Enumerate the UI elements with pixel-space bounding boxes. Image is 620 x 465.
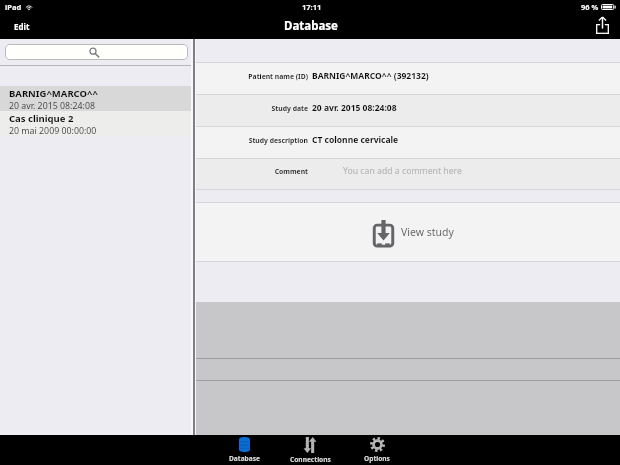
staticText: 17:11 bbox=[302, 2, 322, 12]
staticText: Study description bbox=[248, 136, 308, 145]
staticText: Options bbox=[364, 454, 390, 463]
staticText: Study date bbox=[271, 104, 308, 113]
staticText: Patient name (ID) bbox=[248, 72, 308, 81]
button[interactable]: Cas clinique 2 bbox=[0, 111, 193, 136]
staticText: 20 avr. 2015 08:24:08 bbox=[9, 100, 95, 111]
staticText: iPad bbox=[5, 2, 22, 12]
staticText: BARNIG^MARCO^^ bbox=[9, 87, 98, 100]
button[interactable]: Study description bbox=[196, 127, 620, 158]
button[interactable]: Study date bbox=[196, 95, 620, 126]
staticText: 20 avr. 2015 08:24:08 bbox=[312, 102, 397, 114]
button[interactable]: Connections bbox=[282, 435, 338, 465]
staticText: 20 mai 2009 00:00:00 bbox=[9, 125, 97, 136]
staticText: View study bbox=[401, 225, 454, 239]
staticText: Database bbox=[229, 454, 260, 463]
staticText: Cas clinique 2 bbox=[9, 112, 74, 125]
staticText: Comment bbox=[274, 167, 308, 176]
staticText: You can add a comment here bbox=[343, 165, 462, 177]
staticText: 96 % bbox=[581, 2, 599, 12]
staticText: Edit bbox=[14, 21, 30, 32]
button[interactable]: BARNIG^MARCO^^ bbox=[0, 86, 193, 111]
button[interactable]: View study bbox=[196, 203, 620, 261]
button[interactable]: Comment bbox=[196, 159, 620, 189]
button[interactable] bbox=[5, 44, 188, 60]
staticText: CT colonne cervicale bbox=[312, 134, 399, 146]
staticText: BARNIG^MARCO^^ (392132) bbox=[312, 70, 429, 82]
button[interactable]: Options bbox=[349, 435, 405, 465]
button[interactable]: Patient name (ID) bbox=[196, 63, 620, 94]
button[interactable]: Share bbox=[592, 15, 612, 35]
staticText: Connections bbox=[290, 455, 331, 464]
staticText: Database bbox=[284, 18, 338, 34]
button[interactable]: Database bbox=[216, 435, 272, 465]
button[interactable]: Edit bbox=[0, 17, 40, 36]
